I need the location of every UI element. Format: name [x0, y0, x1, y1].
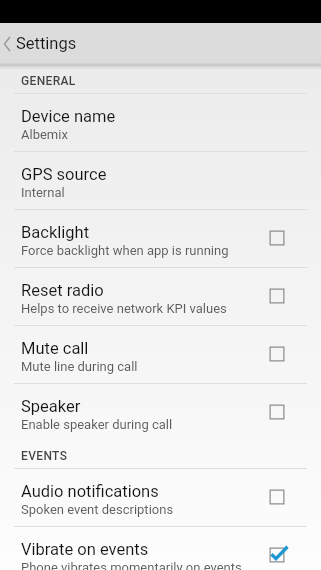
button[interactable]: Device name [0, 94, 321, 151]
button[interactable]: Reset radio [0, 268, 321, 325]
staticText: Reset radio [21, 281, 104, 300]
staticText: Helps to receive network KPI values [21, 301, 227, 316]
staticText: Spoken event descriptions [21, 502, 174, 517]
staticText: Mute line during call [21, 359, 138, 374]
staticText: GPS source [21, 165, 107, 184]
staticText: Speaker [21, 397, 81, 416]
staticText: Backlight [21, 223, 90, 242]
button[interactable]: Mute call [0, 326, 321, 383]
staticText: Audio notifications [21, 482, 159, 501]
staticText: Device name [21, 107, 116, 126]
staticText: Enable speaker during call [21, 417, 173, 432]
staticText: Internal [21, 185, 65, 200]
button[interactable]: Speaker [0, 384, 321, 441]
staticText: Mute call [21, 339, 89, 358]
button[interactable]: Backlight [0, 210, 321, 267]
staticText: GENERAL [21, 74, 76, 88]
button[interactable]: Vibrate on events [0, 527, 321, 570]
staticText: EVENTS [21, 449, 68, 463]
button[interactable]: Audio notifications [0, 469, 321, 526]
button[interactable]: Back [0, 23, 321, 64]
staticText: Albemix [21, 127, 68, 142]
staticText: Phone vibrates momentarily on events [21, 560, 242, 570]
staticText: Vibrate on events [21, 540, 149, 559]
staticText: Force backlight when app is running [21, 243, 229, 258]
staticText: Settings [16, 34, 77, 53]
button[interactable]: GPS source [0, 152, 321, 209]
